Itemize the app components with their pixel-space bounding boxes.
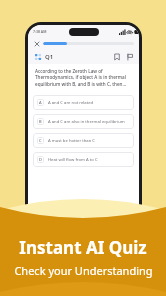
button[interactable]: Close	[33, 40, 40, 47]
button[interactable]: C	[33, 133, 134, 148]
button[interactable]: B	[33, 114, 134, 129]
button[interactable]: Questions grid	[33, 52, 42, 61]
staticText: D	[39, 157, 42, 162]
staticText: Check your Understanding	[14, 263, 153, 278]
staticText: B	[39, 119, 42, 124]
staticText: A and C are also in thermal equilibrium	[48, 119, 125, 125]
staticText: C	[39, 138, 42, 143]
button[interactable]: D	[33, 152, 134, 167]
staticText: Heat will flow from A to C	[48, 157, 98, 163]
staticText: 7:38 AM	[33, 29, 47, 34]
staticText: According to the Zeroth Law of Thermodyn…	[35, 68, 132, 88]
staticText: A and C are not related	[48, 100, 94, 106]
staticText: Q1	[45, 53, 54, 61]
staticText: A must be hotter than C	[48, 138, 95, 144]
staticText: Instant AI Quiz	[19, 236, 147, 259]
button[interactable]: Bookmark	[112, 52, 121, 61]
staticText: A	[39, 100, 42, 105]
button[interactable]: Report	[125, 52, 134, 61]
button[interactable]: A	[33, 95, 134, 110]
